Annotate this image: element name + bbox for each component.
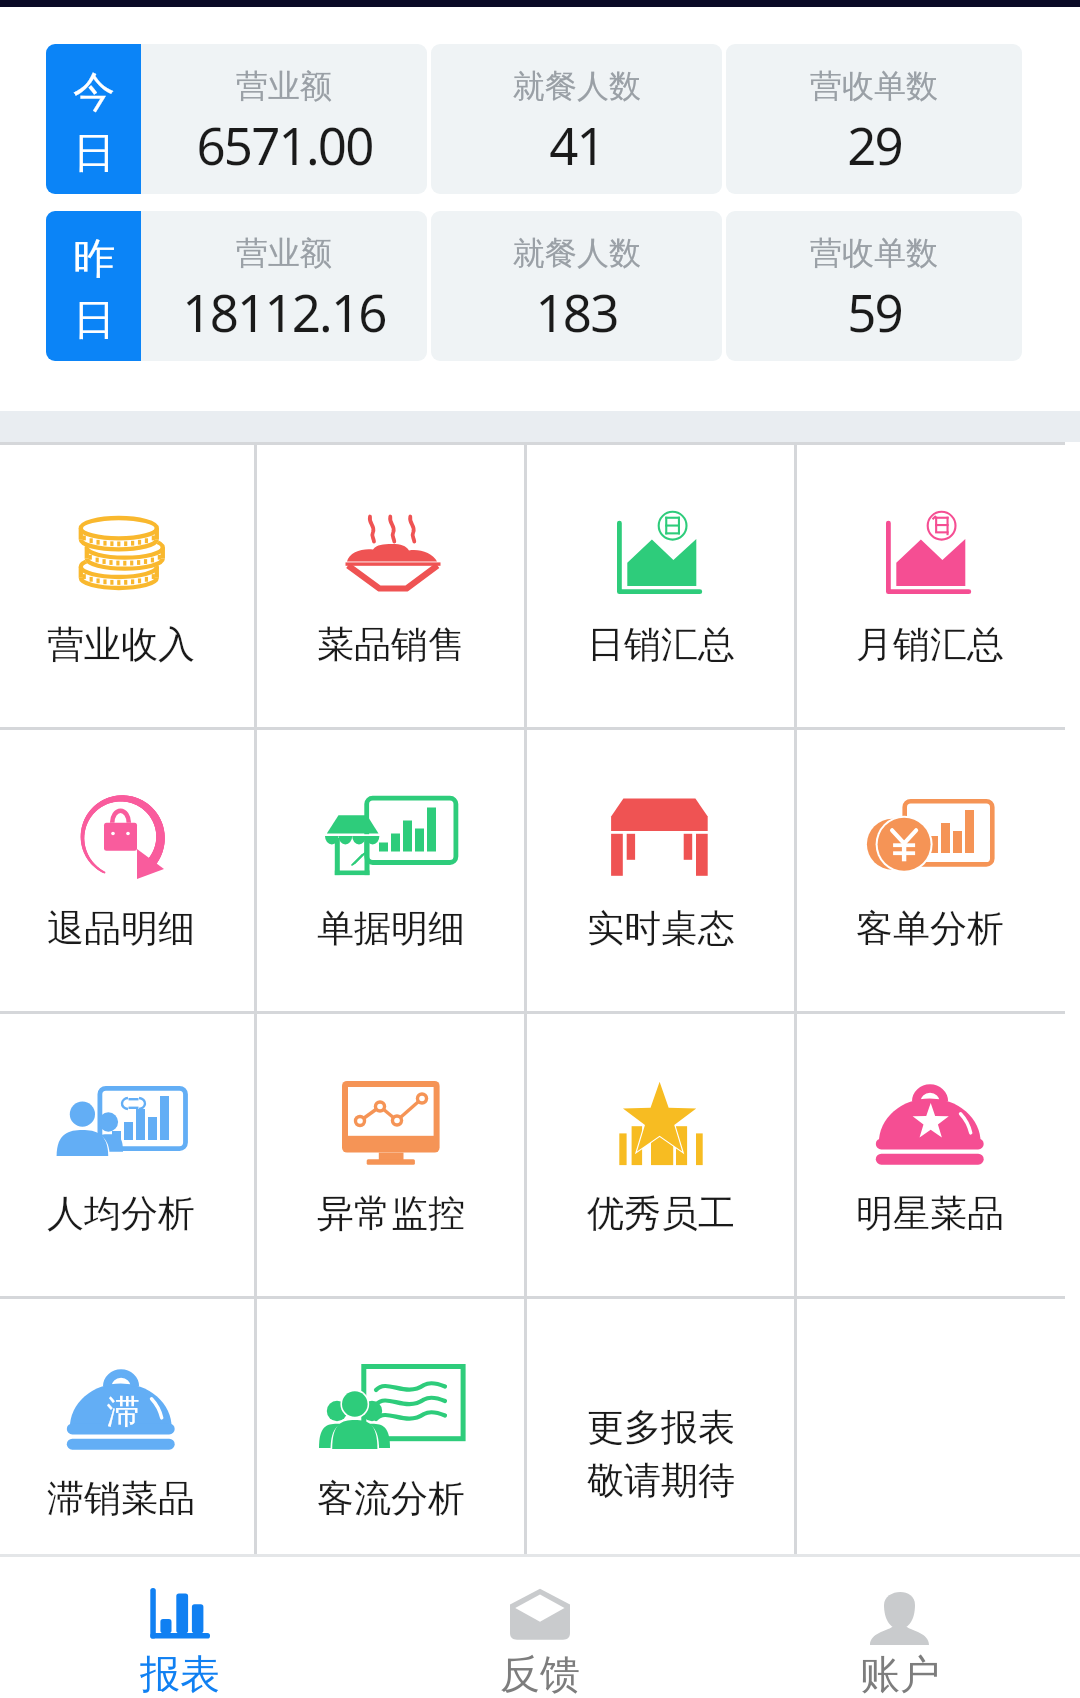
- button[interactable]: 昨: [46, 211, 141, 361]
- button[interactable]: 人均分析: [0, 1013, 256, 1298]
- staticText: 日: [73, 294, 115, 347]
- staticText: 滞: [107, 1391, 140, 1431]
- staticText: 报表: [140, 1649, 220, 1698]
- staticText: 反馈: [500, 1649, 580, 1698]
- button[interactable]: 明星菜品: [795, 1013, 1065, 1298]
- button[interactable]: 月销汇总: [795, 444, 1065, 729]
- staticText: 18112.16: [182, 277, 386, 346]
- staticText: 更多报表: [587, 1404, 735, 1451]
- button[interactable]: 日销汇总: [526, 444, 796, 729]
- staticText: 优秀员工: [587, 1190, 735, 1237]
- button[interactable]: 今: [46, 44, 141, 194]
- staticText: 敬请期待: [587, 1457, 735, 1504]
- button[interactable]: 报表: [0, 1557, 360, 1698]
- staticText: 客单分析: [856, 905, 1004, 952]
- button[interactable]: 营收单数: [726, 211, 1022, 361]
- staticText: 实时桌态: [587, 905, 735, 952]
- button[interactable]: 退品明细: [0, 728, 256, 1013]
- staticText: 59: [847, 277, 902, 346]
- button[interactable]: 单据明细: [256, 728, 526, 1013]
- staticText: 明星菜品: [856, 1190, 1004, 1237]
- button[interactable]: 滞: [0, 1298, 256, 1583]
- staticText: 29: [847, 110, 902, 179]
- staticText: 41: [549, 110, 604, 179]
- button[interactable]: 异常监控: [256, 1013, 526, 1298]
- staticText: 就餐人数: [513, 233, 641, 273]
- button[interactable]: 就餐人数: [431, 211, 722, 361]
- button[interactable]: 营业收入: [0, 444, 256, 729]
- staticText: 单据明细: [317, 905, 465, 952]
- button[interactable]: 反馈: [360, 1557, 720, 1698]
- staticText: 营收单数: [810, 233, 938, 273]
- staticText: 营业额: [236, 233, 332, 273]
- staticText: 营业额: [236, 66, 332, 106]
- staticText: 客流分析: [317, 1475, 465, 1522]
- staticText: 营收单数: [810, 66, 938, 106]
- staticText: 账户: [860, 1649, 940, 1698]
- staticText: 6571.00: [196, 110, 373, 179]
- staticText: 异常监控: [317, 1190, 465, 1237]
- button[interactable]: 客单分析: [795, 728, 1065, 1013]
- button[interactable]: 客流分析: [256, 1298, 526, 1583]
- staticText: 就餐人数: [513, 66, 641, 106]
- button[interactable]: 更多报表: [526, 1298, 796, 1583]
- button[interactable]: 优秀员工: [526, 1013, 796, 1298]
- button[interactable]: 账户: [720, 1557, 1080, 1698]
- button[interactable]: 就餐人数: [431, 44, 722, 194]
- staticText: 日: [73, 127, 115, 180]
- staticText: 菜品销售: [317, 621, 465, 668]
- staticText: 人均分析: [47, 1190, 195, 1237]
- button[interactable]: 营收单数: [726, 44, 1022, 194]
- button[interactable]: 菜品销售: [256, 444, 526, 729]
- staticText: 退品明细: [47, 905, 195, 952]
- staticText: 月销汇总: [856, 621, 1004, 668]
- staticText: 今: [73, 66, 115, 119]
- staticText: 营业收入: [47, 621, 195, 668]
- button[interactable]: 营业额: [141, 44, 427, 194]
- staticText: 滞销菜品: [47, 1475, 195, 1522]
- staticText: 昨: [73, 233, 115, 286]
- staticText: 183: [535, 277, 618, 346]
- staticText: 日销汇总: [587, 621, 735, 668]
- button[interactable]: 实时桌态: [526, 728, 796, 1013]
- button[interactable]: 营业额: [141, 211, 427, 361]
